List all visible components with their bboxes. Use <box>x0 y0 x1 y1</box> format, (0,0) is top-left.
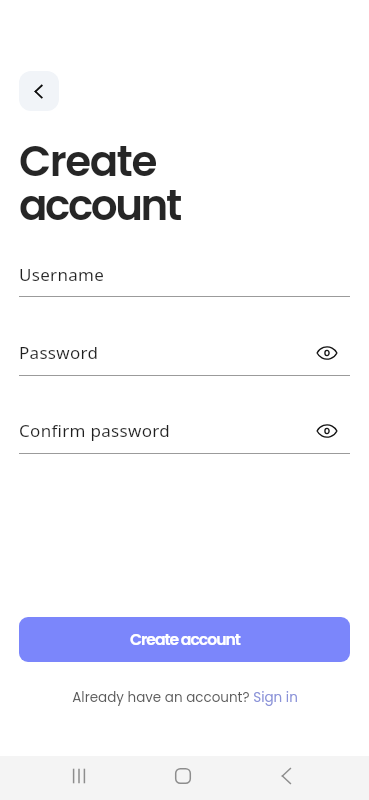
staticText: Username <box>19 263 105 286</box>
staticText: Confirm password <box>19 419 170 442</box>
staticText: account <box>19 176 180 235</box>
staticText: Already have an account? Sign in <box>72 688 298 707</box>
staticText: Create account <box>130 629 240 651</box>
button[interactable] <box>19 262 350 296</box>
staticText: Password <box>19 341 99 364</box>
button[interactable]: Show password <box>313 417 341 445</box>
button[interactable]: Back <box>19 71 59 111</box>
button[interactable] <box>19 341 350 375</box>
button[interactable]: Home <box>164 757 202 795</box>
staticText: Create <box>19 132 156 191</box>
button[interactable]: Create account <box>19 617 350 662</box>
button[interactable] <box>19 419 350 453</box>
button[interactable]: Back <box>267 757 305 795</box>
button[interactable]: Already have an account? Sign in <box>0 686 369 708</box>
button[interactable]: Show password <box>313 339 341 367</box>
button[interactable]: Recent apps <box>60 757 98 795</box>
